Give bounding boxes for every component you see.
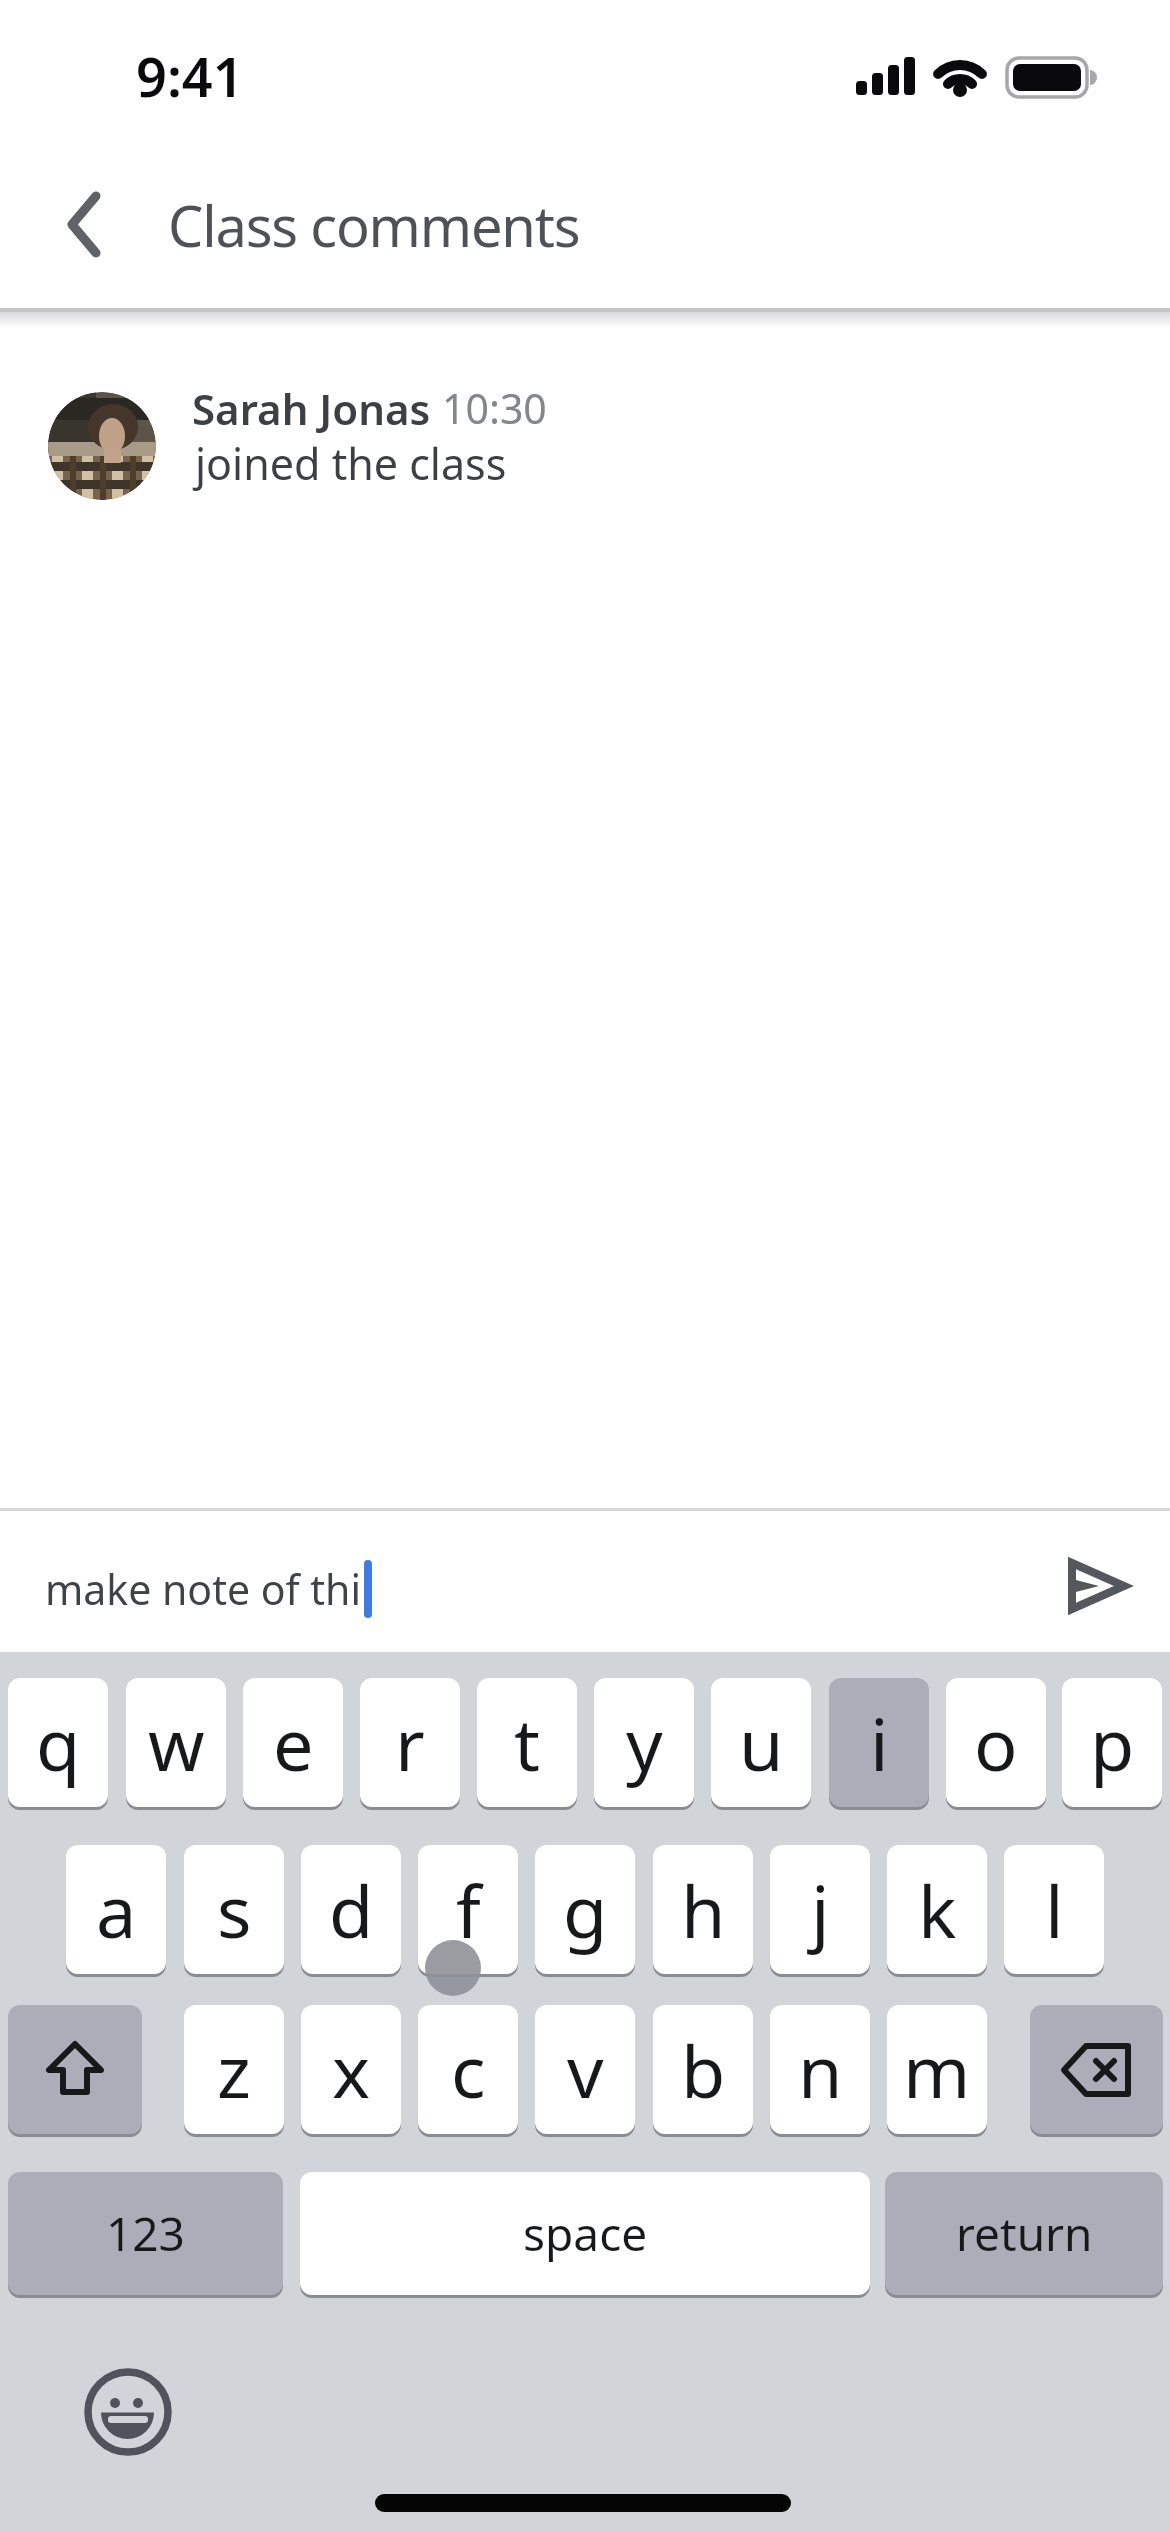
staticText: space [523,2202,648,2265]
staticText: q [36,1694,81,1792]
staticText: 10:30 [442,380,547,436]
button[interactable]: h [653,1845,753,1974]
button[interactable]: i [829,1678,929,1807]
button[interactable] [40,180,130,270]
button[interactable]: b [653,2005,753,2134]
button[interactable]: g [535,1845,635,1974]
button[interactable]: l [1004,1845,1104,1974]
button[interactable] [1030,2005,1163,2134]
button[interactable]: m [887,2005,987,2134]
staticText: t [514,1694,540,1792]
staticText: y [626,1694,663,1792]
button[interactable]: a [66,1845,166,1974]
staticText: h [681,1861,726,1959]
staticText: e [273,1694,314,1792]
staticText: Class comments [168,187,580,263]
staticText: x [332,2021,371,2119]
button[interactable]: z [184,2005,284,2134]
staticText: joined the class [195,434,507,493]
button[interactable]: return [885,2172,1163,2295]
staticText: a [96,1861,137,1959]
staticText: 123 [106,2202,185,2265]
staticText: z [217,2021,251,2119]
button[interactable]: v [535,2005,635,2134]
staticText: b [681,2021,726,2119]
button[interactable] [8,2005,142,2134]
staticText: k [918,1861,957,1959]
staticText: i [870,1694,889,1792]
button[interactable]: f [418,1845,518,1974]
staticText: 9:41 [136,39,244,113]
button[interactable]: d [301,1845,401,1974]
button[interactable]: j [770,1845,870,1974]
button[interactable]: k [887,1845,987,1974]
button[interactable]: t [477,1678,577,1807]
staticText: Sarah Jonas [192,380,431,437]
button[interactable]: q [8,1678,108,1807]
button[interactable]: c [418,2005,518,2134]
button[interactable] [48,392,156,500]
staticText: j [811,1861,830,1959]
button[interactable]: o [946,1678,1046,1807]
button[interactable]: r [360,1678,460,1807]
staticText: f [456,1861,481,1959]
staticText: u [739,1694,784,1792]
button[interactable]: p [1062,1678,1162,1807]
staticText: make note of thi [45,1561,362,1617]
button[interactable]: u [711,1678,811,1807]
staticText: n [798,2021,843,2119]
staticText: m [903,2021,971,2119]
button[interactable]: w [126,1678,226,1807]
button[interactable]: n [770,2005,870,2134]
button[interactable]: make note of thi [0,1511,1170,1655]
staticText: s [217,1861,252,1959]
button[interactable]: e [243,1678,343,1807]
staticText: w [148,1694,205,1792]
staticText: g [563,1861,608,1959]
staticText: o [974,1694,1018,1792]
button[interactable] [1066,1557,1136,1619]
staticText: c [451,2021,486,2119]
staticText: return [956,2202,1093,2265]
staticText: l [1045,1861,1064,1959]
button[interactable]: y [594,1678,694,1807]
staticText: d [329,1861,374,1959]
button[interactable] [84,2368,172,2456]
button[interactable]: s [184,1845,284,1974]
staticText: p [1090,1694,1135,1792]
button[interactable]: x [301,2005,401,2134]
button[interactable]: space [300,2172,870,2295]
staticText: v [567,2021,604,2119]
staticText: r [395,1694,425,1792]
button[interactable]: 123 [8,2172,283,2295]
